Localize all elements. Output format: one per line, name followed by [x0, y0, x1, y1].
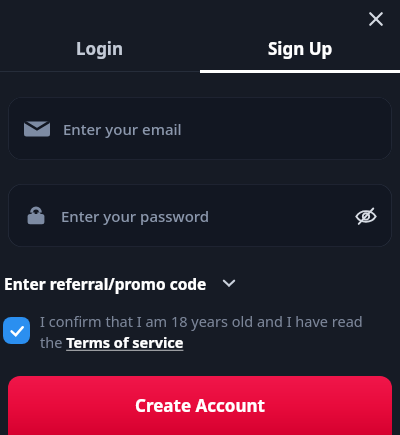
- button[interactable]: Create Account: [8, 376, 392, 435]
- staticText: I confirm that I am 18 years old and I h…: [40, 311, 386, 353]
- button[interactable]: Close: [360, 3, 392, 35]
- staticText: Create Account: [135, 394, 265, 417]
- button[interactable]: Enter referral/promo code: [0, 267, 400, 299]
- button[interactable]: Enter your password: [8, 184, 392, 247]
- staticText: Enter referral/promo code: [4, 273, 207, 294]
- staticText: Enter your email: [63, 119, 182, 139]
- button[interactable]: Login: [0, 26, 200, 70]
- button[interactable]: Enter your email: [8, 97, 392, 160]
- staticText: Enter your password: [61, 206, 210, 226]
- staticText: Sign Up: [268, 37, 333, 60]
- button[interactable]: I confirm that I am 18 years old and I h…: [0, 311, 386, 353]
- button[interactable]: Show password: [348, 198, 384, 234]
- staticText: Login: [76, 37, 124, 60]
- button[interactable]: Sign Up: [200, 26, 400, 70]
